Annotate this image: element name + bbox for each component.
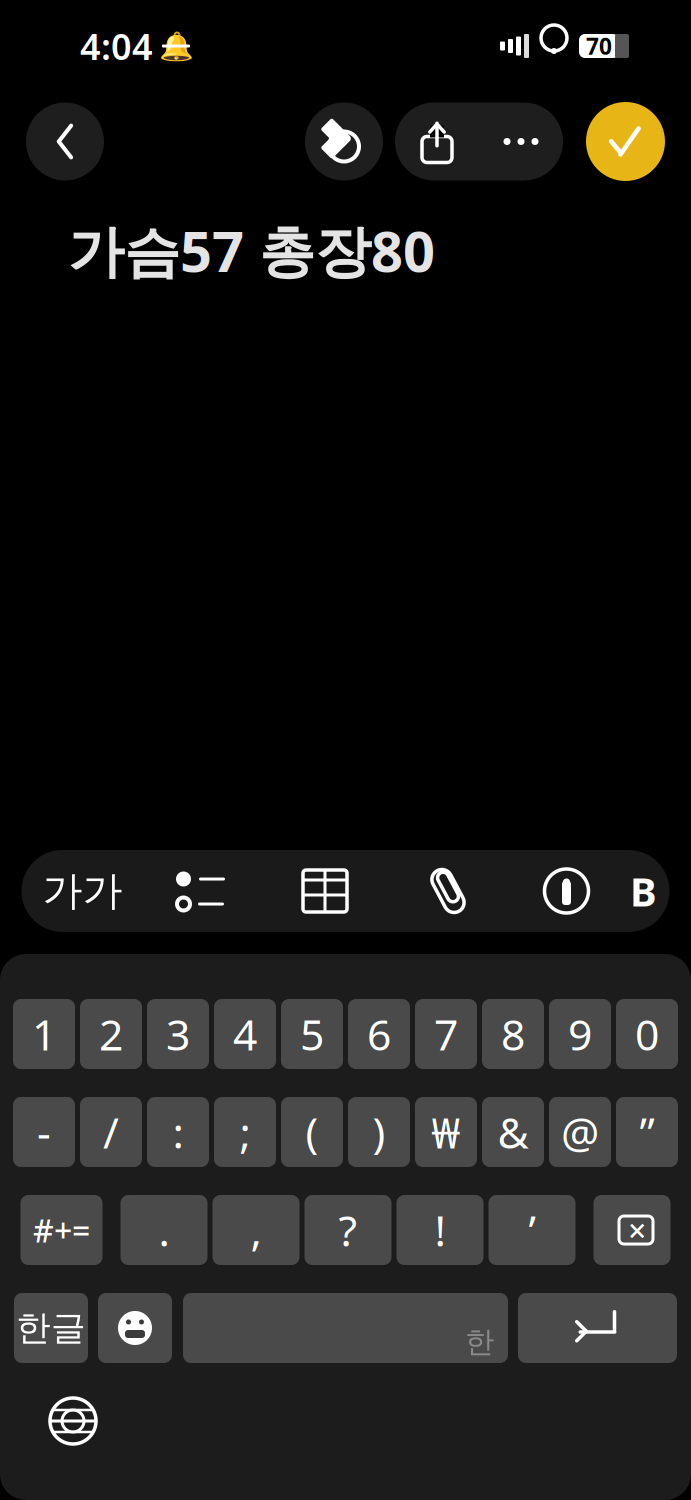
button[interactable]: #+= [20,1195,102,1265]
staticText: ( [305,1104,318,1160]
staticText: ) [372,1104,385,1160]
staticText: 5 [300,1006,324,1062]
staticText: , [250,1202,261,1258]
button[interactable]: Return [518,1293,677,1363]
button[interactable]: 가가 [27,850,137,932]
staticText: 9 [568,1006,592,1062]
button[interactable]: 5 [281,999,343,1069]
button[interactable]: & [482,1097,544,1167]
staticText: 6 [367,1006,391,1062]
button[interactable]: More options [479,102,563,180]
staticText: B [630,864,657,917]
staticText: @ [561,1104,599,1160]
staticText: / [103,1104,119,1160]
staticText: ₩ [431,1104,460,1160]
staticText: 7 [434,1006,458,1062]
button[interactable]: Delete [593,1195,670,1265]
button[interactable]: 2 [80,999,142,1069]
button[interactable]: ( [281,1097,343,1167]
button[interactable]: Share [395,102,479,180]
staticText: 4 [233,1006,257,1062]
staticText: : [172,1104,183,1160]
staticText: - [37,1104,51,1160]
button[interactable]: 7 [415,999,477,1069]
button[interactable]: 9 [549,999,611,1069]
button[interactable]: Attach file [386,850,509,932]
staticText: 한글 [16,1307,86,1349]
button[interactable]: 3 [147,999,209,1069]
button[interactable]: Checklist [137,850,263,932]
button[interactable]: Table [263,850,386,932]
button[interactable]: Bold [623,850,663,932]
staticText: 한 [465,1324,494,1360]
button[interactable]: Done [586,102,665,181]
staticText: 3 [166,1006,190,1062]
staticText: 4:04 [80,22,153,70]
button[interactable]: 0 [616,999,678,1069]
button[interactable]: 8 [482,999,544,1069]
button[interactable]: 1 [13,999,75,1069]
button[interactable]: ) [348,1097,410,1167]
staticText: 가슴57 총장80 [68,213,435,287]
button[interactable]: Space [183,1293,508,1363]
button[interactable]: ; [214,1097,276,1167]
staticText: 가가 [42,866,122,915]
staticText: #+= [33,1209,90,1251]
staticText: ” [639,1104,654,1160]
button[interactable]: : [147,1097,209,1167]
staticText: 1 [32,1006,56,1062]
button[interactable]: @ [549,1097,611,1167]
button[interactable]: ? [304,1195,391,1265]
staticText: ; [239,1104,250,1160]
button[interactable]: - [13,1097,75,1167]
staticText: 🔔 [158,30,193,62]
button[interactable]: / [80,1097,142,1167]
button[interactable]: . [120,1195,207,1265]
staticText: . [158,1202,169,1258]
staticText: 70 [586,31,612,61]
button[interactable]: ₩ [415,1097,477,1167]
button[interactable]: Switch keyboard [28,1381,118,1461]
button[interactable]: Markup [509,850,623,932]
button[interactable]: ’ [488,1195,575,1265]
button[interactable]: ! [396,1195,483,1265]
staticText: ! [434,1202,445,1258]
button[interactable]: Emoji [98,1293,172,1363]
staticText: × [628,1209,646,1251]
button[interactable]: 4 [214,999,276,1069]
button[interactable]: Undo [305,102,383,180]
button[interactable]: , [212,1195,299,1265]
staticText: ? [338,1202,357,1258]
button[interactable]: 한글 [14,1293,88,1363]
staticText: 8 [501,1006,525,1062]
staticText: & [497,1104,528,1160]
staticText: ’ [528,1202,535,1258]
button[interactable]: Back [26,102,104,180]
staticText: 2 [99,1006,123,1062]
button[interactable]: ” [616,1097,678,1167]
staticText: 0 [635,1006,659,1062]
button[interactable]: 6 [348,999,410,1069]
